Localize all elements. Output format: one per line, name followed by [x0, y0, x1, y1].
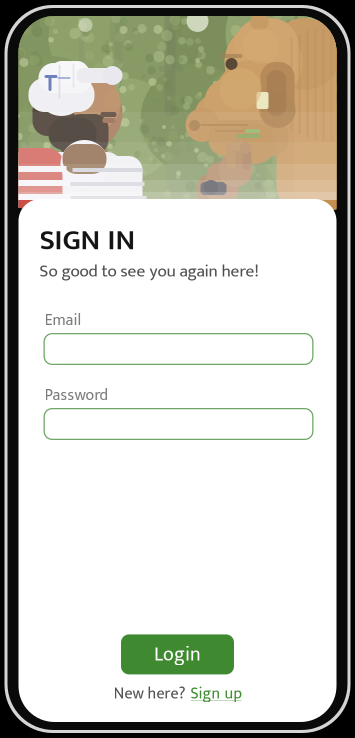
- staticText: Sign up: [190, 680, 241, 707]
- staticText: So good to see you again here!: [39, 257, 258, 286]
- staticText: Email: [44, 307, 81, 334]
- staticText: New here?: [113, 680, 185, 707]
- staticText: Login: [154, 638, 201, 671]
- button[interactable]: Sign up: [190, 680, 241, 707]
- staticText: Password: [44, 382, 108, 409]
- button[interactable]: Login: [121, 634, 234, 674]
- staticText: SIGN IN: [39, 216, 135, 265]
